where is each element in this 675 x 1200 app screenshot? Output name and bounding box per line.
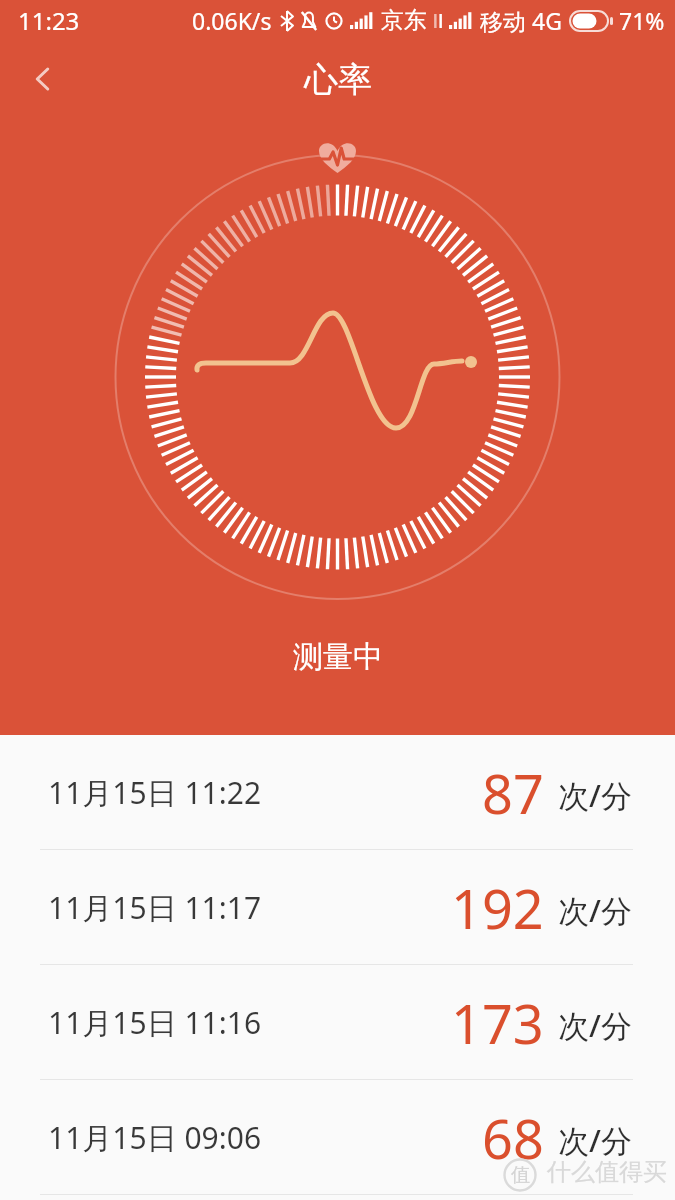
staticText: 11:23 — [18, 4, 80, 37]
staticText: 11月15日 09:06 — [48, 1117, 262, 1158]
staticText: 11月15日 11:16 — [48, 1002, 262, 1043]
button[interactable]: 11月15日 11:17 — [0, 850, 675, 965]
staticText: 测量中 — [293, 638, 383, 676]
staticText: 173 — [451, 986, 544, 1060]
staticText: 什么值得买 — [547, 1157, 667, 1187]
staticText: 京东 — [381, 6, 427, 35]
button[interactable]: 11月15日 11:16 — [0, 965, 675, 1080]
staticText: 次/分 — [558, 889, 632, 931]
staticText: 次/分 — [558, 1004, 632, 1046]
button[interactable] — [22, 59, 62, 99]
staticText: 11月15日 11:22 — [48, 772, 262, 813]
button[interactable]: 11月15日 11:22 — [0, 735, 675, 850]
staticText: 值 — [511, 1163, 530, 1187]
staticText: 87 — [482, 756, 544, 830]
staticText: 192 — [451, 871, 544, 945]
staticText: 次/分 — [558, 1119, 632, 1161]
staticText: 次/分 — [558, 774, 632, 816]
staticText: 68 — [482, 1101, 544, 1175]
staticText: 心率 — [304, 58, 372, 101]
staticText: 移动 4G — [480, 5, 562, 36]
staticText: 0.06K/s — [192, 5, 272, 36]
staticText: 71% — [619, 5, 665, 36]
staticText: 11月15日 11:17 — [48, 887, 262, 928]
button[interactable]: 11月15日 09:06 — [0, 1080, 675, 1195]
